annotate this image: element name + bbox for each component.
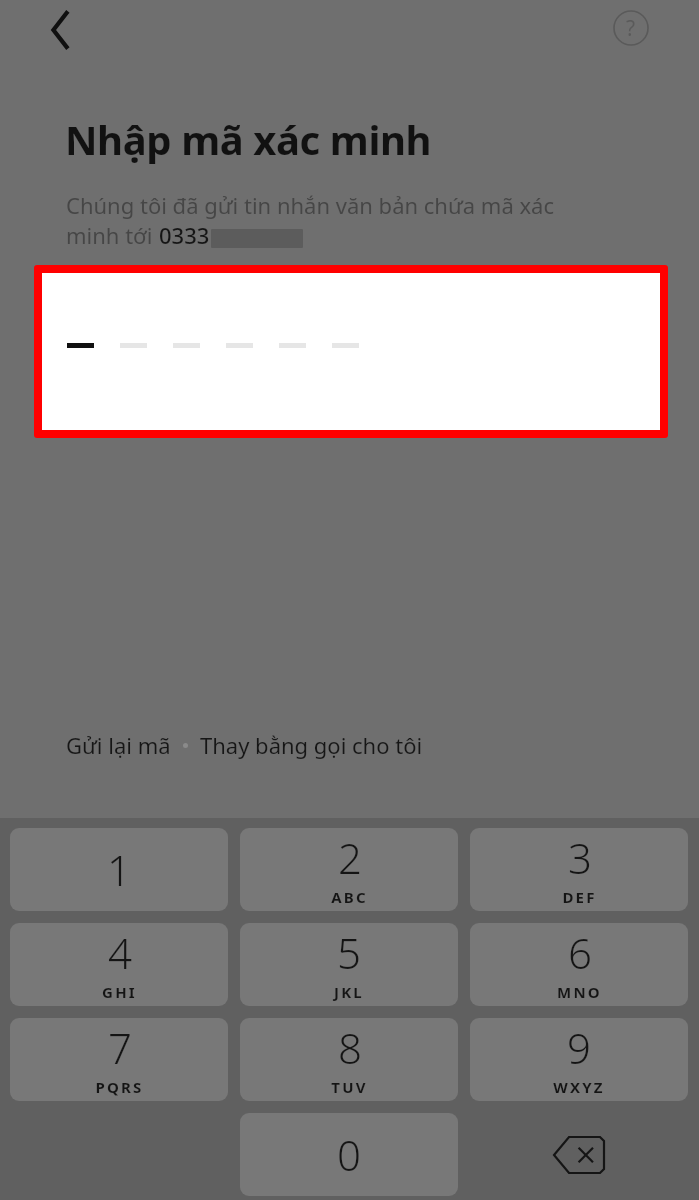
button[interactable] — [42, 273, 660, 430]
staticText: JKL — [334, 982, 364, 1002]
staticText: ? — [626, 14, 636, 43]
staticText: DEF — [562, 887, 597, 907]
button[interactable]: 6 — [470, 923, 688, 1006]
staticText: Thay bằng gọi cho tôi — [200, 730, 423, 760]
staticText: Chúng tôi đã gửi tin nhắn văn bản chứa m… — [66, 190, 555, 220]
staticText: MNO — [557, 982, 602, 1002]
staticText: WXYZ — [553, 1077, 605, 1097]
staticText: 2 — [338, 829, 362, 886]
staticText: ABC — [331, 887, 368, 907]
staticText: 0 — [337, 1126, 361, 1183]
button[interactable]: Help — [607, 4, 655, 52]
staticText: 6 — [568, 924, 592, 981]
staticText: 0333 — [159, 220, 210, 250]
button[interactable]: 4 — [10, 923, 228, 1006]
button[interactable]: 1 — [10, 828, 228, 911]
button[interactable]: 3 — [470, 828, 688, 911]
staticText: PQRS — [95, 1077, 144, 1097]
staticText: 9 — [567, 1019, 591, 1076]
staticText: Gửi lại mã — [66, 730, 171, 760]
button[interactable]: 0 — [240, 1113, 458, 1196]
button[interactable]: 9 — [470, 1018, 688, 1101]
button[interactable]: 5 — [240, 923, 458, 1006]
staticText: 4 — [108, 924, 132, 981]
button[interactable]: 2 — [240, 828, 458, 911]
staticText: 5 — [337, 924, 361, 981]
staticText: 8 — [338, 1019, 362, 1076]
button[interactable]: Thay bằng gọi cho tôi — [200, 730, 423, 760]
staticText: 7 — [108, 1019, 132, 1076]
button[interactable]: 7 — [10, 1018, 228, 1101]
staticText: 3 — [568, 829, 592, 886]
button[interactable]: Gửi lại mã — [66, 730, 171, 760]
button[interactable]: 8 — [240, 1018, 458, 1101]
staticText: TUV — [331, 1077, 368, 1097]
staticText: minh tới — [66, 220, 159, 250]
staticText: Nhập mã xác minh — [65, 112, 432, 166]
button[interactable]: Backspace — [470, 1113, 688, 1196]
staticText: GHI — [102, 982, 137, 1002]
button[interactable]: Back — [34, 4, 86, 56]
staticText: 1 — [107, 841, 131, 898]
